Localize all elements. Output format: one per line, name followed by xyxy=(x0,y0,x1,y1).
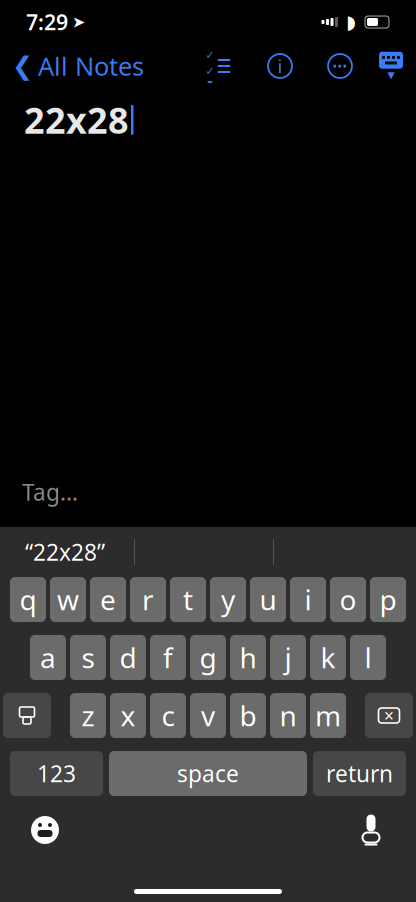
staticText: 7:29 xyxy=(26,8,68,36)
button[interactable]: b xyxy=(230,693,266,738)
staticText: x xyxy=(120,697,135,734)
button[interactable]: u xyxy=(250,577,286,622)
staticText: ❮ xyxy=(12,52,33,80)
button[interactable]: f xyxy=(150,635,186,680)
button[interactable]: m xyxy=(310,693,346,738)
button[interactable]: i xyxy=(290,577,326,622)
button[interactable]: “22x28” xyxy=(0,530,134,574)
staticText: l xyxy=(364,639,371,676)
staticText: m xyxy=(315,697,341,734)
button[interactable]: Delete xyxy=(365,693,413,738)
button[interactable]: w xyxy=(50,577,86,622)
button[interactable]: Tag... xyxy=(22,471,78,513)
staticText: Tag... xyxy=(22,477,78,507)
staticText: g xyxy=(199,639,216,676)
staticText: All Notes xyxy=(38,49,144,83)
button[interactable]: ❮ xyxy=(0,43,144,89)
staticText: n xyxy=(279,697,296,734)
button[interactable]: Shift xyxy=(3,693,51,738)
staticText: q xyxy=(19,581,36,618)
staticText: “22x28” xyxy=(25,537,105,567)
button[interactable]: q xyxy=(10,577,46,622)
staticText: ▼ xyxy=(387,70,394,80)
staticText: ✓ xyxy=(205,65,214,77)
staticText: 22x28 xyxy=(24,96,129,144)
staticText: ➤ xyxy=(72,13,85,31)
staticText: h xyxy=(239,639,256,676)
button[interactable]: h xyxy=(230,635,266,680)
button[interactable]: a xyxy=(30,635,66,680)
button[interactable]: c xyxy=(150,693,186,738)
staticText: return xyxy=(326,758,393,788)
staticText: s xyxy=(81,639,94,676)
button[interactable]: s xyxy=(70,635,106,680)
button[interactable]: e xyxy=(90,577,126,622)
staticText: c xyxy=(161,697,174,734)
staticText: k xyxy=(320,639,335,676)
button[interactable]: j xyxy=(270,635,306,680)
staticText: d xyxy=(119,639,136,676)
staticText: × xyxy=(384,704,394,727)
staticText: a xyxy=(40,639,56,676)
staticText: u xyxy=(259,581,276,618)
button[interactable]: l xyxy=(350,635,386,680)
staticText: e xyxy=(100,581,116,618)
staticText: y xyxy=(221,581,235,618)
staticText: f xyxy=(163,639,173,676)
staticText: space xyxy=(177,758,239,788)
staticText: t xyxy=(183,581,193,618)
button[interactable]: x xyxy=(110,693,146,738)
staticText: i xyxy=(277,54,282,78)
staticText: j xyxy=(284,639,291,676)
button[interactable]: n xyxy=(270,693,306,738)
button[interactable]: return xyxy=(313,751,406,796)
staticText: v xyxy=(201,697,215,734)
button[interactable]: o xyxy=(330,577,366,622)
button[interactable]: Hide Keyboard xyxy=(378,53,416,79)
button[interactable]: z xyxy=(70,693,106,738)
staticText: ••• xyxy=(332,58,347,74)
staticText: z xyxy=(81,697,94,734)
staticText: p xyxy=(379,581,396,618)
button[interactable]: 123 xyxy=(10,751,103,796)
button[interactable]: space xyxy=(109,751,307,796)
button[interactable]: k xyxy=(310,635,346,680)
staticText: ✓ xyxy=(205,49,214,61)
staticText: i xyxy=(304,581,311,618)
button[interactable]: p xyxy=(370,577,406,622)
button[interactable]: Dictate xyxy=(360,814,416,846)
staticText: o xyxy=(339,581,356,618)
button[interactable]: r xyxy=(130,577,166,622)
button[interactable]: Emoji xyxy=(0,815,60,845)
staticText: ◗ xyxy=(346,11,356,33)
staticText: r xyxy=(142,581,154,618)
staticText: w xyxy=(57,581,79,618)
staticText: b xyxy=(239,697,256,734)
button[interactable]: t xyxy=(170,577,206,622)
button[interactable]: g xyxy=(190,635,226,680)
staticText: 123 xyxy=(37,758,76,788)
button[interactable]: More xyxy=(322,48,358,84)
button[interactable]: Checklist xyxy=(198,47,238,85)
button[interactable]: Format xyxy=(262,48,298,84)
button[interactable]: y xyxy=(210,577,246,622)
button[interactable]: v xyxy=(190,693,226,738)
button[interactable]: d xyxy=(110,635,146,680)
